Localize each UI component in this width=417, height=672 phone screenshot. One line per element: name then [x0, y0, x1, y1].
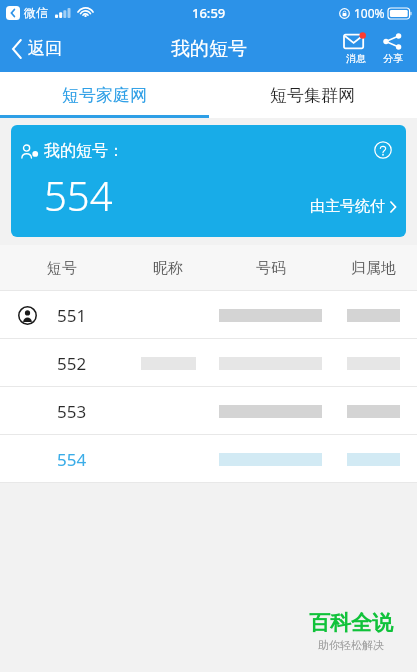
staticText: 归属地: [351, 259, 396, 278]
button[interactable]: 554: [0, 435, 417, 483]
staticText: 百科全说: [309, 610, 393, 636]
staticText: 返回: [28, 38, 62, 59]
button[interactable]: 由主号统付: [310, 197, 396, 216]
button[interactable]: 帮助: [371, 138, 395, 162]
button[interactable]: 消息: [337, 31, 375, 67]
staticText: 短号: [47, 259, 77, 278]
staticText: 553: [57, 400, 87, 423]
staticText: 昵称: [153, 259, 183, 278]
staticText: 号码: [256, 259, 286, 278]
button[interactable]: 短号家庭网: [0, 72, 208, 118]
staticText: 消息: [346, 52, 366, 65]
staticText: 短号集群网: [270, 85, 355, 106]
button[interactable]: 552: [0, 339, 417, 387]
button[interactable]: 分享: [375, 31, 410, 67]
staticText: 551: [57, 304, 87, 327]
staticText: 16:59: [192, 4, 226, 22]
staticText: 我的短号：: [44, 141, 124, 161]
staticText: 分享: [383, 52, 403, 65]
staticText: 我的短号: [171, 37, 247, 61]
button[interactable]: 返回: [0, 25, 74, 72]
staticText: 短号家庭网: [62, 85, 147, 106]
staticText: 微信: [24, 5, 48, 20]
staticText: 554: [57, 448, 87, 471]
staticText: 554: [44, 168, 113, 222]
button[interactable]: 我的短号：: [11, 125, 406, 237]
button[interactable]: 551: [0, 291, 417, 339]
staticText: 由主号统付: [310, 197, 385, 216]
button[interactable]: 553: [0, 387, 417, 435]
button[interactable]: 短号集群网: [208, 72, 417, 118]
staticText: 552: [57, 352, 87, 375]
staticText: 100%: [354, 5, 385, 21]
staticText: 助你轻松解决: [318, 638, 384, 652]
